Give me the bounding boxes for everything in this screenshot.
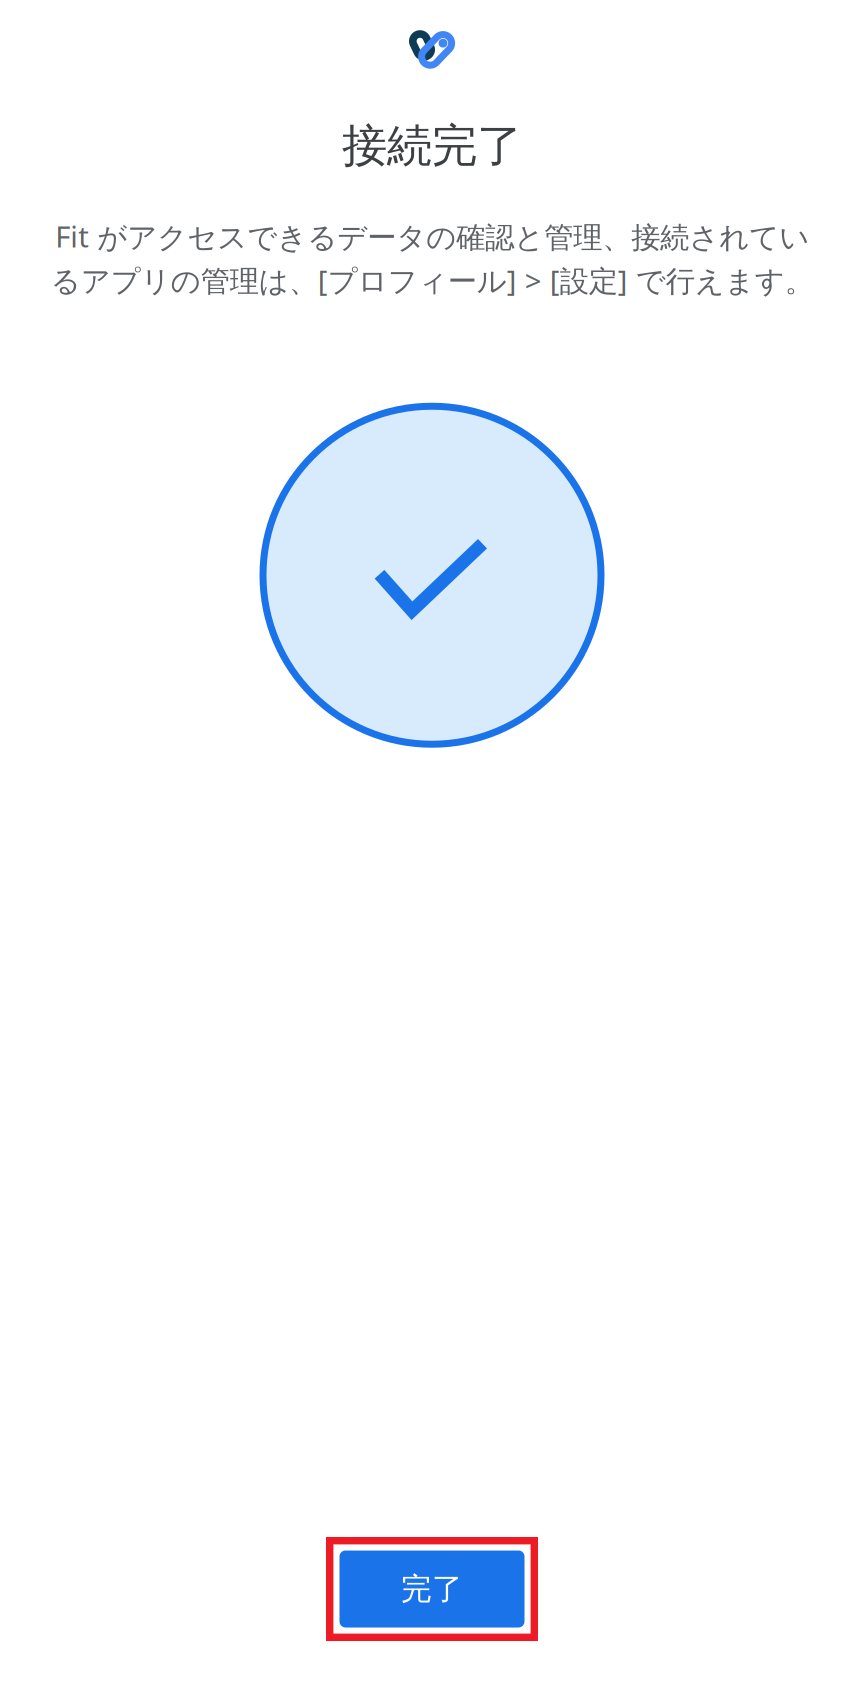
button[interactable]: 完了 <box>339 1550 524 1627</box>
staticText: Fit がアクセスできるデータの確認と管理、接続されてい るアプリの管理は、[プ… <box>50 217 813 300</box>
staticText: 接続完了 <box>342 118 522 174</box>
staticText: 完了 <box>401 1570 463 1608</box>
